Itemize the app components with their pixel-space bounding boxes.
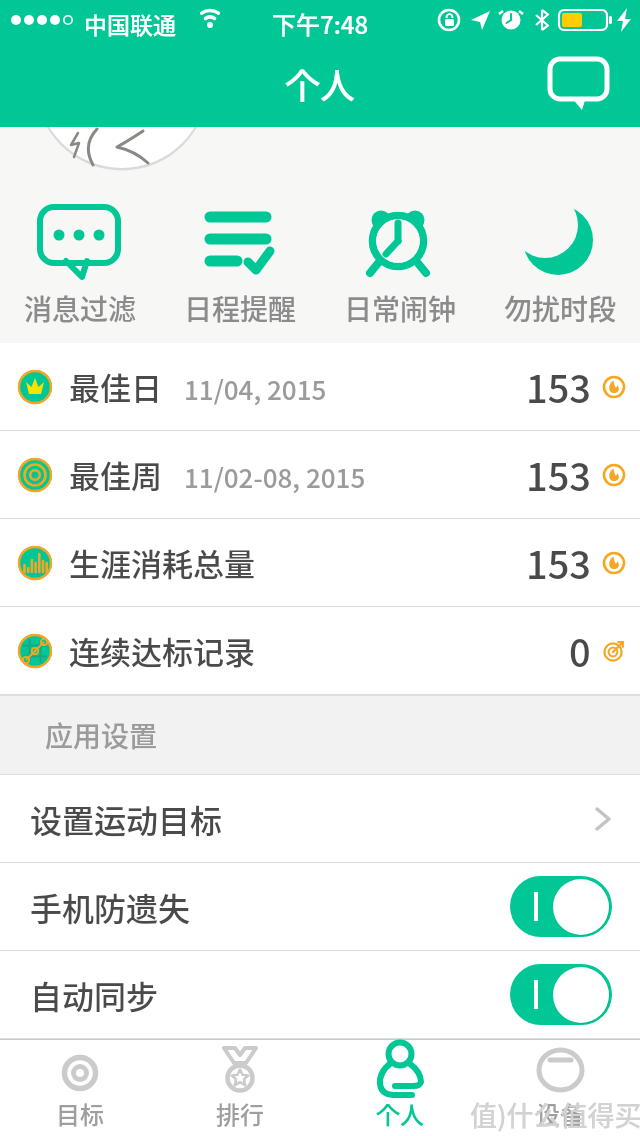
button[interactable]: 个人 — [320, 1039, 480, 1136]
staticText: 最佳日 — [69, 364, 162, 409]
staticText: 目标 — [56, 1096, 104, 1131]
staticText: 0 — [569, 623, 591, 678]
button[interactable]: 目标 — [0, 1039, 160, 1136]
staticText: 153 — [526, 535, 591, 590]
staticText: 中国联通 — [84, 7, 176, 40]
staticText: 个人 — [376, 1096, 424, 1131]
button[interactable]: 设置运动目标 — [0, 775, 640, 863]
staticText: 手机防遗失 — [30, 884, 191, 930]
button[interactable]: 日程提醒 — [160, 283, 320, 333]
staticText: 153 — [526, 447, 591, 502]
staticText: 应用设置 — [45, 715, 158, 756]
staticText: 设备 — [536, 1096, 584, 1131]
button[interactable]: 勿扰时段 — [480, 283, 640, 333]
staticText: 日程提醒 — [184, 288, 297, 329]
button[interactable]: 生涯消耗总量 — [0, 519, 640, 607]
button[interactable] — [538, 50, 618, 120]
staticText: 生涯消耗总量 — [69, 540, 255, 585]
button[interactable] — [510, 964, 612, 1025]
button[interactable]: 连续达标记录 — [0, 607, 640, 695]
staticText: 连续达标记录 — [69, 628, 255, 673]
staticText: 值)什么值得买 — [470, 1095, 640, 1134]
button[interactable]: 消息过滤 — [0, 283, 160, 333]
staticText: 个人 — [285, 58, 356, 109]
staticText: 153 — [526, 359, 591, 414]
staticText: 下午7:48 — [272, 6, 369, 41]
staticText: 勿扰时段 — [504, 288, 617, 329]
button[interactable]: 设备 — [480, 1039, 640, 1136]
button[interactable]: 最佳周 — [0, 431, 640, 519]
staticText: 自动同步 — [30, 972, 159, 1018]
button[interactable] — [510, 876, 612, 937]
button[interactable]: 排行 — [160, 1039, 320, 1136]
staticText: 设置运动目标 — [30, 796, 223, 842]
staticText: 消息过滤 — [24, 288, 137, 329]
staticText: 排行 — [216, 1096, 264, 1131]
staticText: 11/04, 2015 — [184, 370, 327, 408]
button[interactable]: 日常闹钟 — [320, 283, 480, 333]
staticText: 最佳周 — [69, 452, 162, 497]
button[interactable]: 最佳日 — [0, 343, 640, 431]
staticText: 日常闹钟 — [344, 288, 457, 329]
staticText: 11/02-08, 2015 — [184, 458, 366, 496]
